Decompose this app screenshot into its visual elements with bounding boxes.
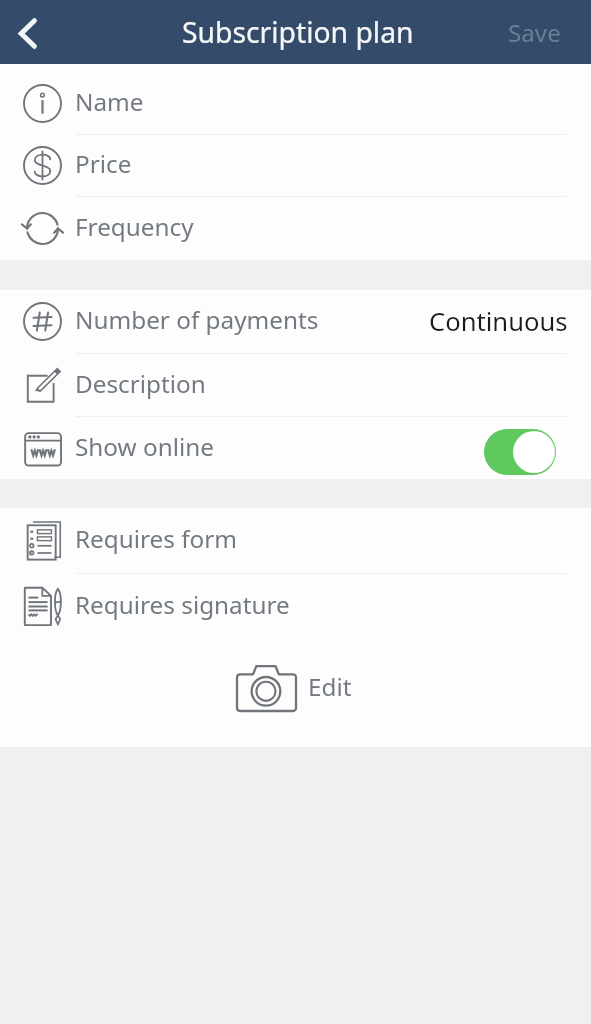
staticText: Requires signature	[75, 588, 290, 621]
button[interactable]: Save	[498, 6, 571, 59]
staticText: Subscription plan	[182, 13, 414, 52]
staticText: Number of payments	[75, 303, 319, 336]
staticText: Requires form	[75, 522, 238, 555]
button[interactable]: Requires form	[0, 508, 591, 573]
button[interactable]: Show online	[0, 417, 591, 479]
button[interactable]: Description	[0, 354, 591, 416]
button[interactable]: Frequency	[0, 197, 591, 260]
button[interactable]	[484, 429, 556, 475]
staticText: Frequency	[75, 210, 194, 243]
staticText: Continuous	[429, 304, 568, 339]
staticText: Description	[75, 367, 206, 400]
button[interactable]: Requires signature	[0, 574, 591, 639]
staticText: Edit	[308, 670, 352, 703]
button[interactable]: Number of payments	[0, 290, 591, 353]
button[interactable]: Back	[0, 0, 54, 64]
staticText: Price	[75, 147, 132, 180]
button[interactable]: Price	[0, 135, 591, 196]
staticText: Save	[508, 16, 561, 49]
button[interactable]: Edit	[0, 639, 591, 747]
button[interactable]: Name	[0, 72, 591, 134]
staticText: Name	[75, 85, 144, 118]
staticText: Show online	[75, 430, 214, 463]
